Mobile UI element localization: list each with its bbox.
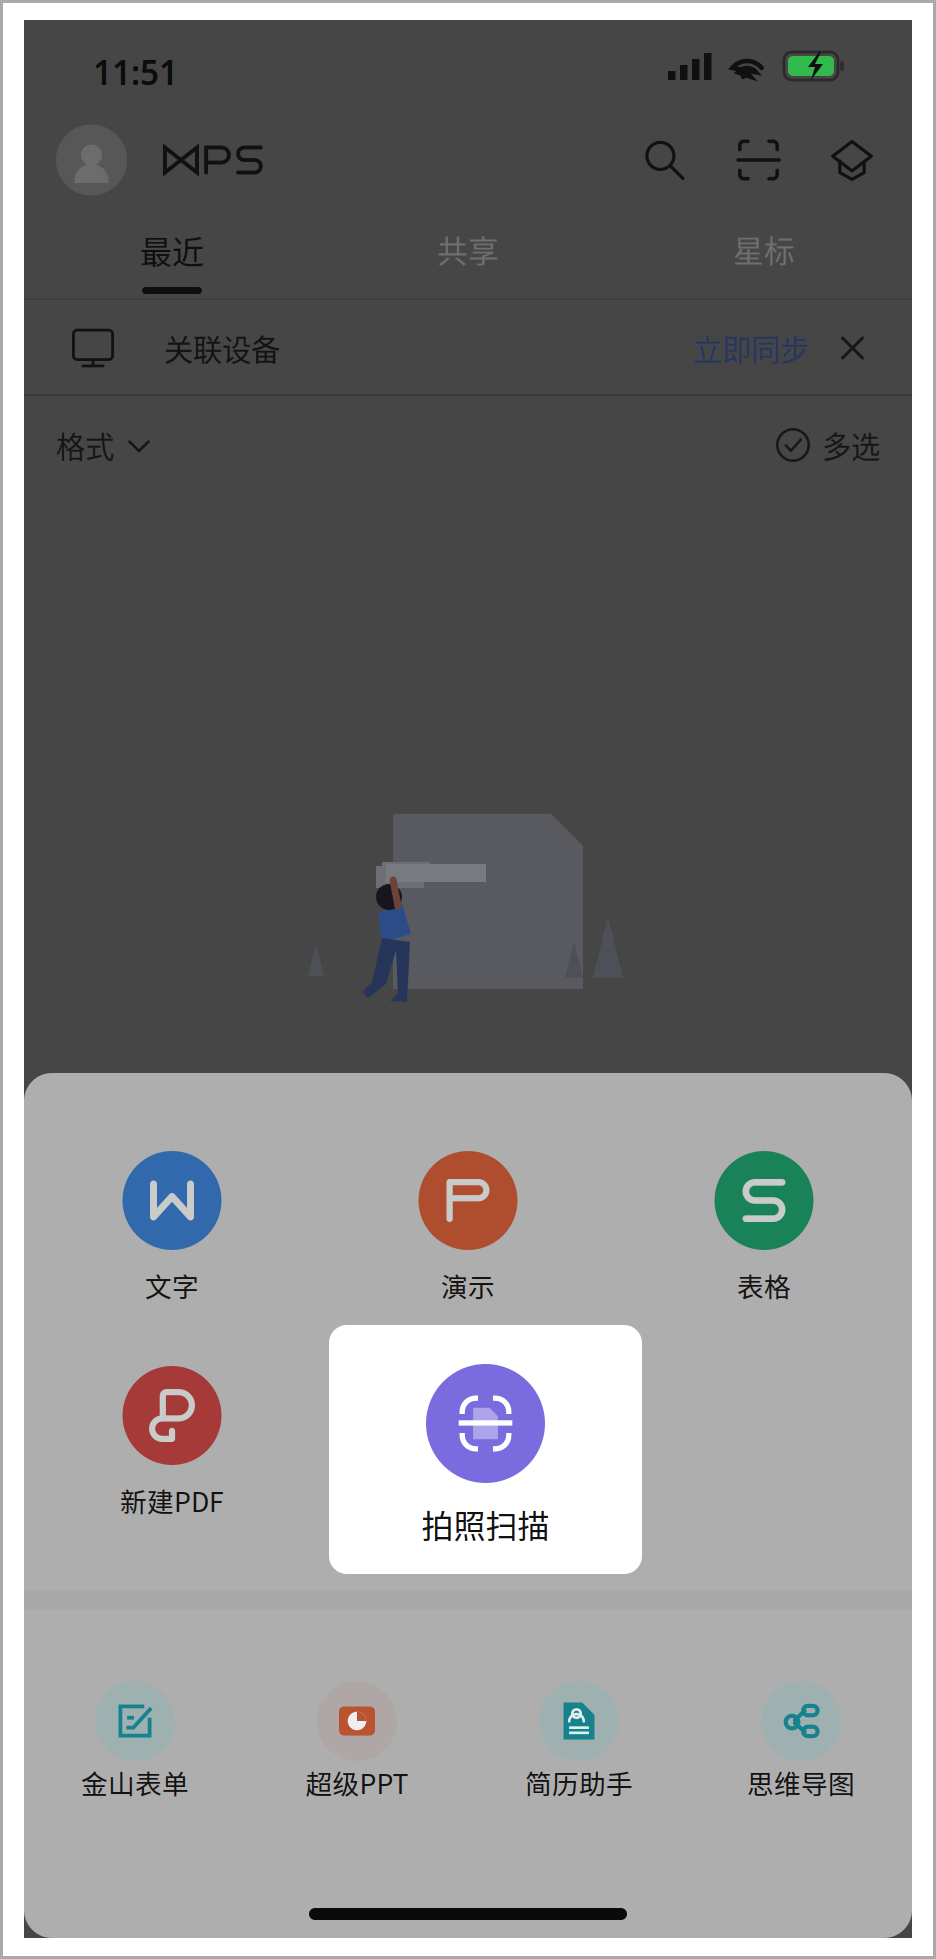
staticText: 最近 bbox=[140, 227, 204, 273]
staticText: 共享 bbox=[437, 227, 499, 271]
button[interactable]: Account bbox=[56, 124, 127, 195]
button[interactable]: 思维导图 bbox=[690, 1681, 912, 1836]
staticText: 格式 bbox=[56, 424, 114, 466]
staticText: 超级PPT bbox=[305, 1763, 408, 1802]
button[interactable]: 共享 bbox=[320, 208, 616, 300]
button[interactable]: 立即同步 bbox=[693, 327, 809, 369]
button[interactable]: 格式 bbox=[56, 424, 150, 466]
staticText: 拍照扫描 bbox=[421, 1501, 549, 1547]
button[interactable]: 金山表单 bbox=[24, 1681, 246, 1836]
button[interactable]: 文字 bbox=[24, 1151, 320, 1366]
button[interactable]: Dismiss bbox=[841, 336, 864, 359]
staticText: 简历助手 bbox=[525, 1763, 633, 1802]
button[interactable]: 超级PPT bbox=[246, 1681, 468, 1836]
staticText: 新建PDF bbox=[120, 1481, 224, 1520]
staticText: 关联设备 bbox=[164, 327, 280, 369]
button[interactable]: 多选 bbox=[776, 424, 880, 466]
button[interactable]: 表格 bbox=[616, 1151, 912, 1366]
staticText: 立即同步 bbox=[693, 327, 809, 369]
button[interactable]: Scan document bbox=[738, 139, 779, 180]
staticText: 11:51 bbox=[93, 50, 178, 94]
staticText: 金山表单 bbox=[81, 1763, 189, 1802]
button[interactable]: Search bbox=[644, 139, 685, 180]
staticText: 思维导图 bbox=[747, 1763, 855, 1802]
button[interactable]: 演示 bbox=[320, 1151, 616, 1366]
button[interactable]: Learning centre bbox=[831, 139, 873, 181]
staticText: 表格 bbox=[737, 1266, 791, 1305]
button[interactable]: 简历助手 bbox=[468, 1681, 690, 1836]
staticText: 演示 bbox=[441, 1266, 495, 1305]
staticText: 多选 bbox=[822, 424, 880, 466]
button[interactable]: 新建PDF bbox=[24, 1366, 320, 1581]
button[interactable]: 最近 bbox=[24, 208, 320, 300]
staticText: 文字 bbox=[145, 1266, 199, 1305]
staticText: 星标 bbox=[733, 227, 795, 271]
button[interactable]: 星标 bbox=[616, 208, 912, 300]
button[interactable]: 拍照扫描 bbox=[329, 1325, 642, 1574]
